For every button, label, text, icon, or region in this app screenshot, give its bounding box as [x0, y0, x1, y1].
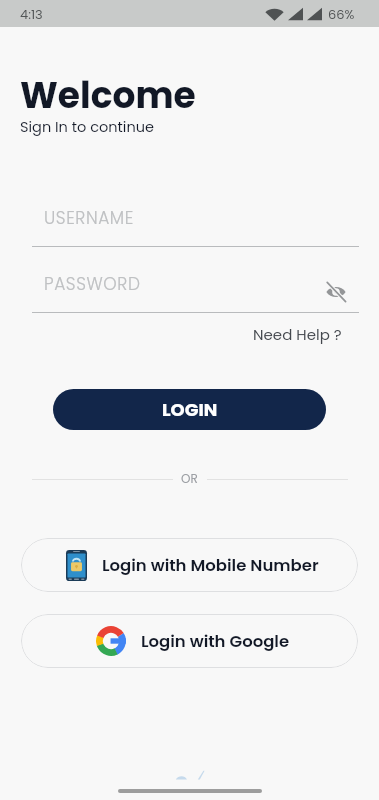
staticText: Login with Google: [141, 630, 290, 653]
staticText: Sign In to continue: [20, 117, 154, 137]
button[interactable]: Login with Google: [21, 614, 358, 668]
staticText: 66%: [328, 5, 355, 23]
staticText: OR: [181, 470, 198, 487]
button[interactable]: Need Help ?: [253, 324, 342, 345]
staticText: Welcome: [20, 70, 196, 120]
button[interactable]: Toggle password visibility: [322, 278, 350, 306]
button[interactable]: Login with Mobile Number: [21, 538, 358, 592]
staticText: 4:13: [20, 5, 43, 23]
staticText: Login with Mobile Number: [102, 554, 319, 577]
staticText: LOGIN: [162, 397, 218, 422]
button[interactable]: LOGIN: [53, 389, 326, 430]
staticText: PASSWORD: [44, 272, 141, 296]
staticText: USERNAME: [44, 206, 134, 230]
